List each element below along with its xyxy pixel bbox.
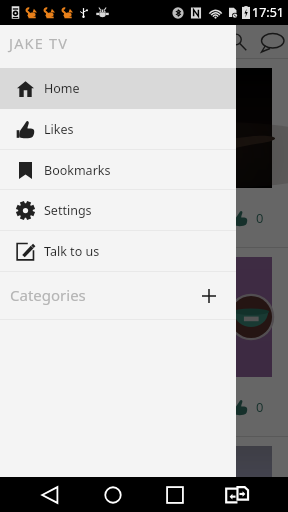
- staticText: Home: [44, 80, 80, 97]
- staticText: Talk to us: [44, 243, 100, 260]
- button[interactable]: Talk to us: [0, 231, 236, 272]
- button[interactable]: Home: [98, 480, 128, 510]
- button[interactable]: Back: [36, 480, 66, 510]
- button[interactable]: Chat: [257, 27, 287, 57]
- button[interactable]: Bookmarks: [0, 150, 236, 190]
- button[interactable]: Search: [223, 27, 253, 57]
- staticText: Bookmarks: [44, 162, 111, 179]
- button[interactable]: Recents: [160, 480, 190, 510]
- staticText: Likes: [44, 121, 74, 138]
- button[interactable]: 0: [0, 437, 288, 512]
- button[interactable]: Add category: [200, 287, 218, 305]
- button[interactable]: Rotate screen: [222, 480, 252, 510]
- button[interactable]: 0: [0, 248, 288, 437]
- button[interactable]: Settings: [0, 190, 236, 231]
- staticText: Settings: [44, 202, 92, 219]
- button[interactable]: Home: [0, 68, 236, 109]
- staticText: 17:51: [252, 4, 284, 21]
- staticText: Categories: [10, 285, 86, 305]
- button[interactable]: Likes: [0, 109, 236, 150]
- staticText: JAKE TV: [9, 33, 69, 53]
- staticText: 0: [256, 209, 264, 227]
- staticText: 0: [256, 398, 264, 416]
- button[interactable]: 0: [0, 59, 288, 248]
- button[interactable]: Categories: [0, 272, 236, 320]
